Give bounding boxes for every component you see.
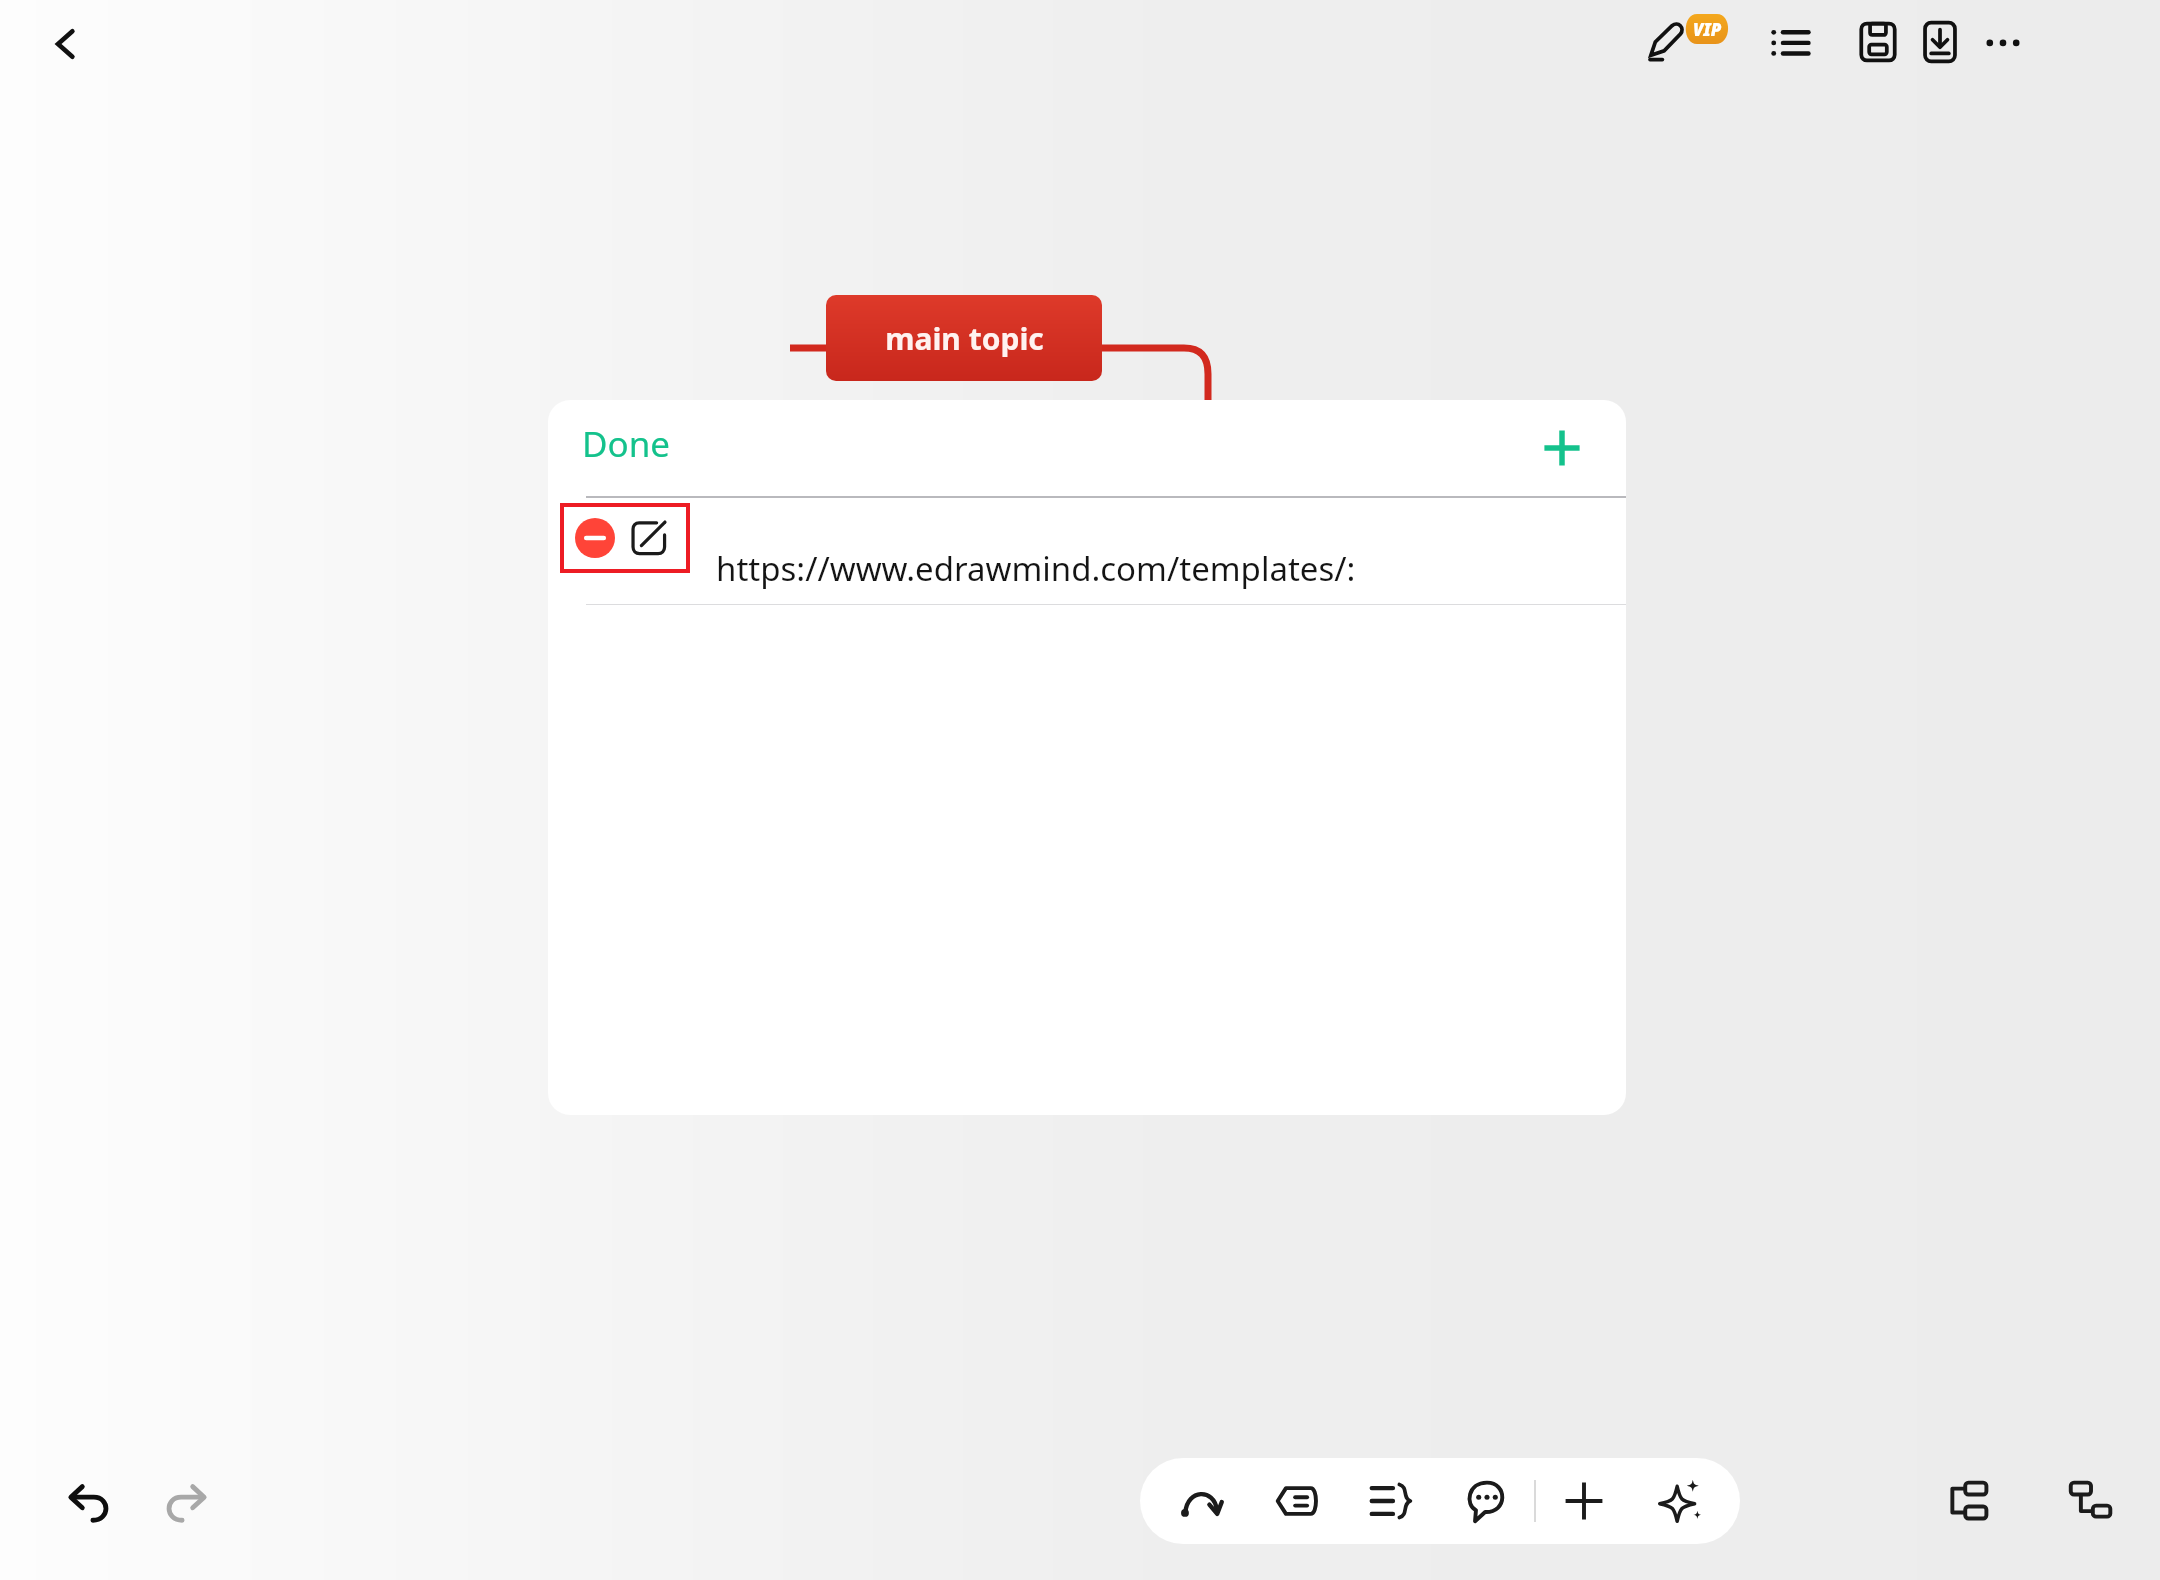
staticText: VIP [1693,18,1722,41]
button[interactable]: Delete [548,496,1626,604]
button[interactable]: Note [1249,1458,1344,1544]
button[interactable]: Done [582,420,671,468]
button[interactable]: VIP [1682,14,1732,44]
staticText: https://www.edrawmind.com/templates/: [716,546,1356,591]
button[interactable]: Add [1520,406,1604,490]
button[interactable]: Back [30,8,102,80]
button[interactable]: Pen [1625,2,1705,82]
button[interactable]: List [1750,2,1830,82]
button[interactable]: main topic [826,295,1102,381]
button[interactable]: Download [1900,2,1980,82]
button[interactable]: Undo arc [1154,1458,1249,1544]
button[interactable]: Right layout [1925,1458,2011,1544]
button[interactable]: More [1963,2,2043,82]
staticText: Done [582,420,671,468]
button[interactable]: Undo [50,1462,130,1542]
button[interactable]: Comment [1439,1458,1534,1544]
button[interactable]: Add [1536,1458,1631,1544]
button[interactable]: Save [1838,2,1918,82]
button[interactable]: Edit [626,515,672,561]
button[interactable]: AI [1631,1458,1726,1544]
button[interactable]: Delete [572,515,618,561]
button[interactable]: Redo [145,1462,225,1542]
staticText: main topic [885,318,1044,359]
button[interactable]: Org layout [2048,1458,2134,1544]
button[interactable]: Outline [1344,1458,1439,1544]
